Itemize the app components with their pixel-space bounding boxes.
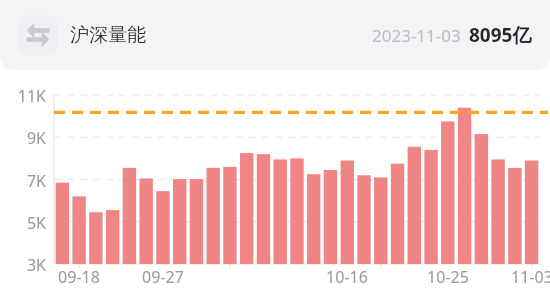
staticText: 5K (26, 212, 46, 232)
staticText: 9K (26, 127, 46, 147)
staticText: 09-27 (142, 266, 184, 288)
staticText: 3K (26, 254, 46, 274)
staticText: 11-03 (511, 266, 550, 288)
staticText: 7K (26, 170, 46, 190)
staticText: 10-16 (326, 266, 368, 288)
staticText: 09-18 (58, 266, 100, 288)
staticText: 8095亿 (469, 22, 532, 48)
staticText: 沪深量能 (70, 23, 146, 47)
staticText: 11K (17, 85, 46, 105)
staticText: 2023-11-03 (372, 24, 461, 47)
staticText: 10-25 (427, 266, 469, 288)
button[interactable]: 沪深量能 指标 (18, 15, 58, 55)
button[interactable]: 沪深量能 柱状图 (0, 0, 550, 290)
